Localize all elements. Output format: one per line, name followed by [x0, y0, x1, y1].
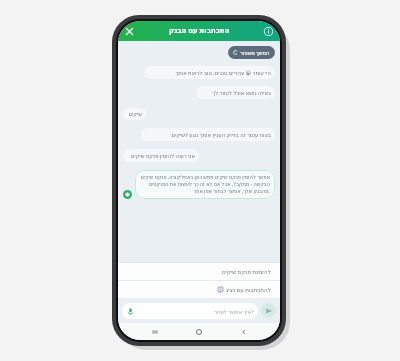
button[interactable]: אני רוצה להזמין פנקס שיקים [123, 149, 199, 162]
staticText: שיקים [127, 111, 142, 117]
button[interactable]: המשך מאוחר [228, 46, 275, 59]
staticText: בטוח עומר זה בדיוק העניין אותך נוגע לשיק… [145, 131, 271, 138]
button[interactable]: Voice input [122, 303, 258, 319]
staticText: להתכתבות עם נציג [226, 286, 271, 294]
staticText: היי עומר 😀 צהריים טובים, טוב לראות אותך [148, 69, 271, 76]
staticText: אפשר להזמין פנקס שיקים ממש כאן באפליקציה… [140, 174, 270, 195]
staticText: המשך מאוחר [240, 49, 270, 56]
button[interactable]: Recent apps [147, 324, 163, 340]
staticText: איך אפשר לעזור? [214, 308, 254, 315]
button[interactable]: להתכתבות עם נציג [118, 281, 280, 298]
staticText: התכתבות עם הבנק [169, 26, 230, 36]
button[interactable]: Close [122, 24, 137, 39]
button[interactable]: Bank agent avatar [123, 190, 132, 199]
button[interactable]: היי עומר 😀 צהריים טובים, טוב לראות אותך [144, 66, 275, 79]
staticText: אני רוצה להזמין פנקס שיקים [127, 152, 195, 159]
button[interactable]: אפשר להזמין פנקס שיקים ממש כאן באפליקציה… [135, 170, 275, 199]
staticText: להזמנת פנקס שיקים [222, 268, 271, 276]
button[interactable]: שיקים [123, 108, 146, 120]
button[interactable]: Back [236, 324, 252, 340]
button[interactable]: Home [191, 324, 207, 340]
staticText: באיזה נושא אוכל לעזור לך [200, 89, 271, 96]
button[interactable]: Send message [261, 303, 276, 318]
button[interactable]: Voice input [126, 307, 135, 316]
button[interactable]: Information [261, 24, 276, 39]
button[interactable]: באיזה נושא אוכל לעזור לך [196, 86, 275, 99]
button[interactable]: להזמנת פנקס שיקים [118, 263, 280, 280]
button[interactable]: בטוח עומר זה בדיוק העניין אותך נוגע לשיק… [141, 128, 275, 141]
